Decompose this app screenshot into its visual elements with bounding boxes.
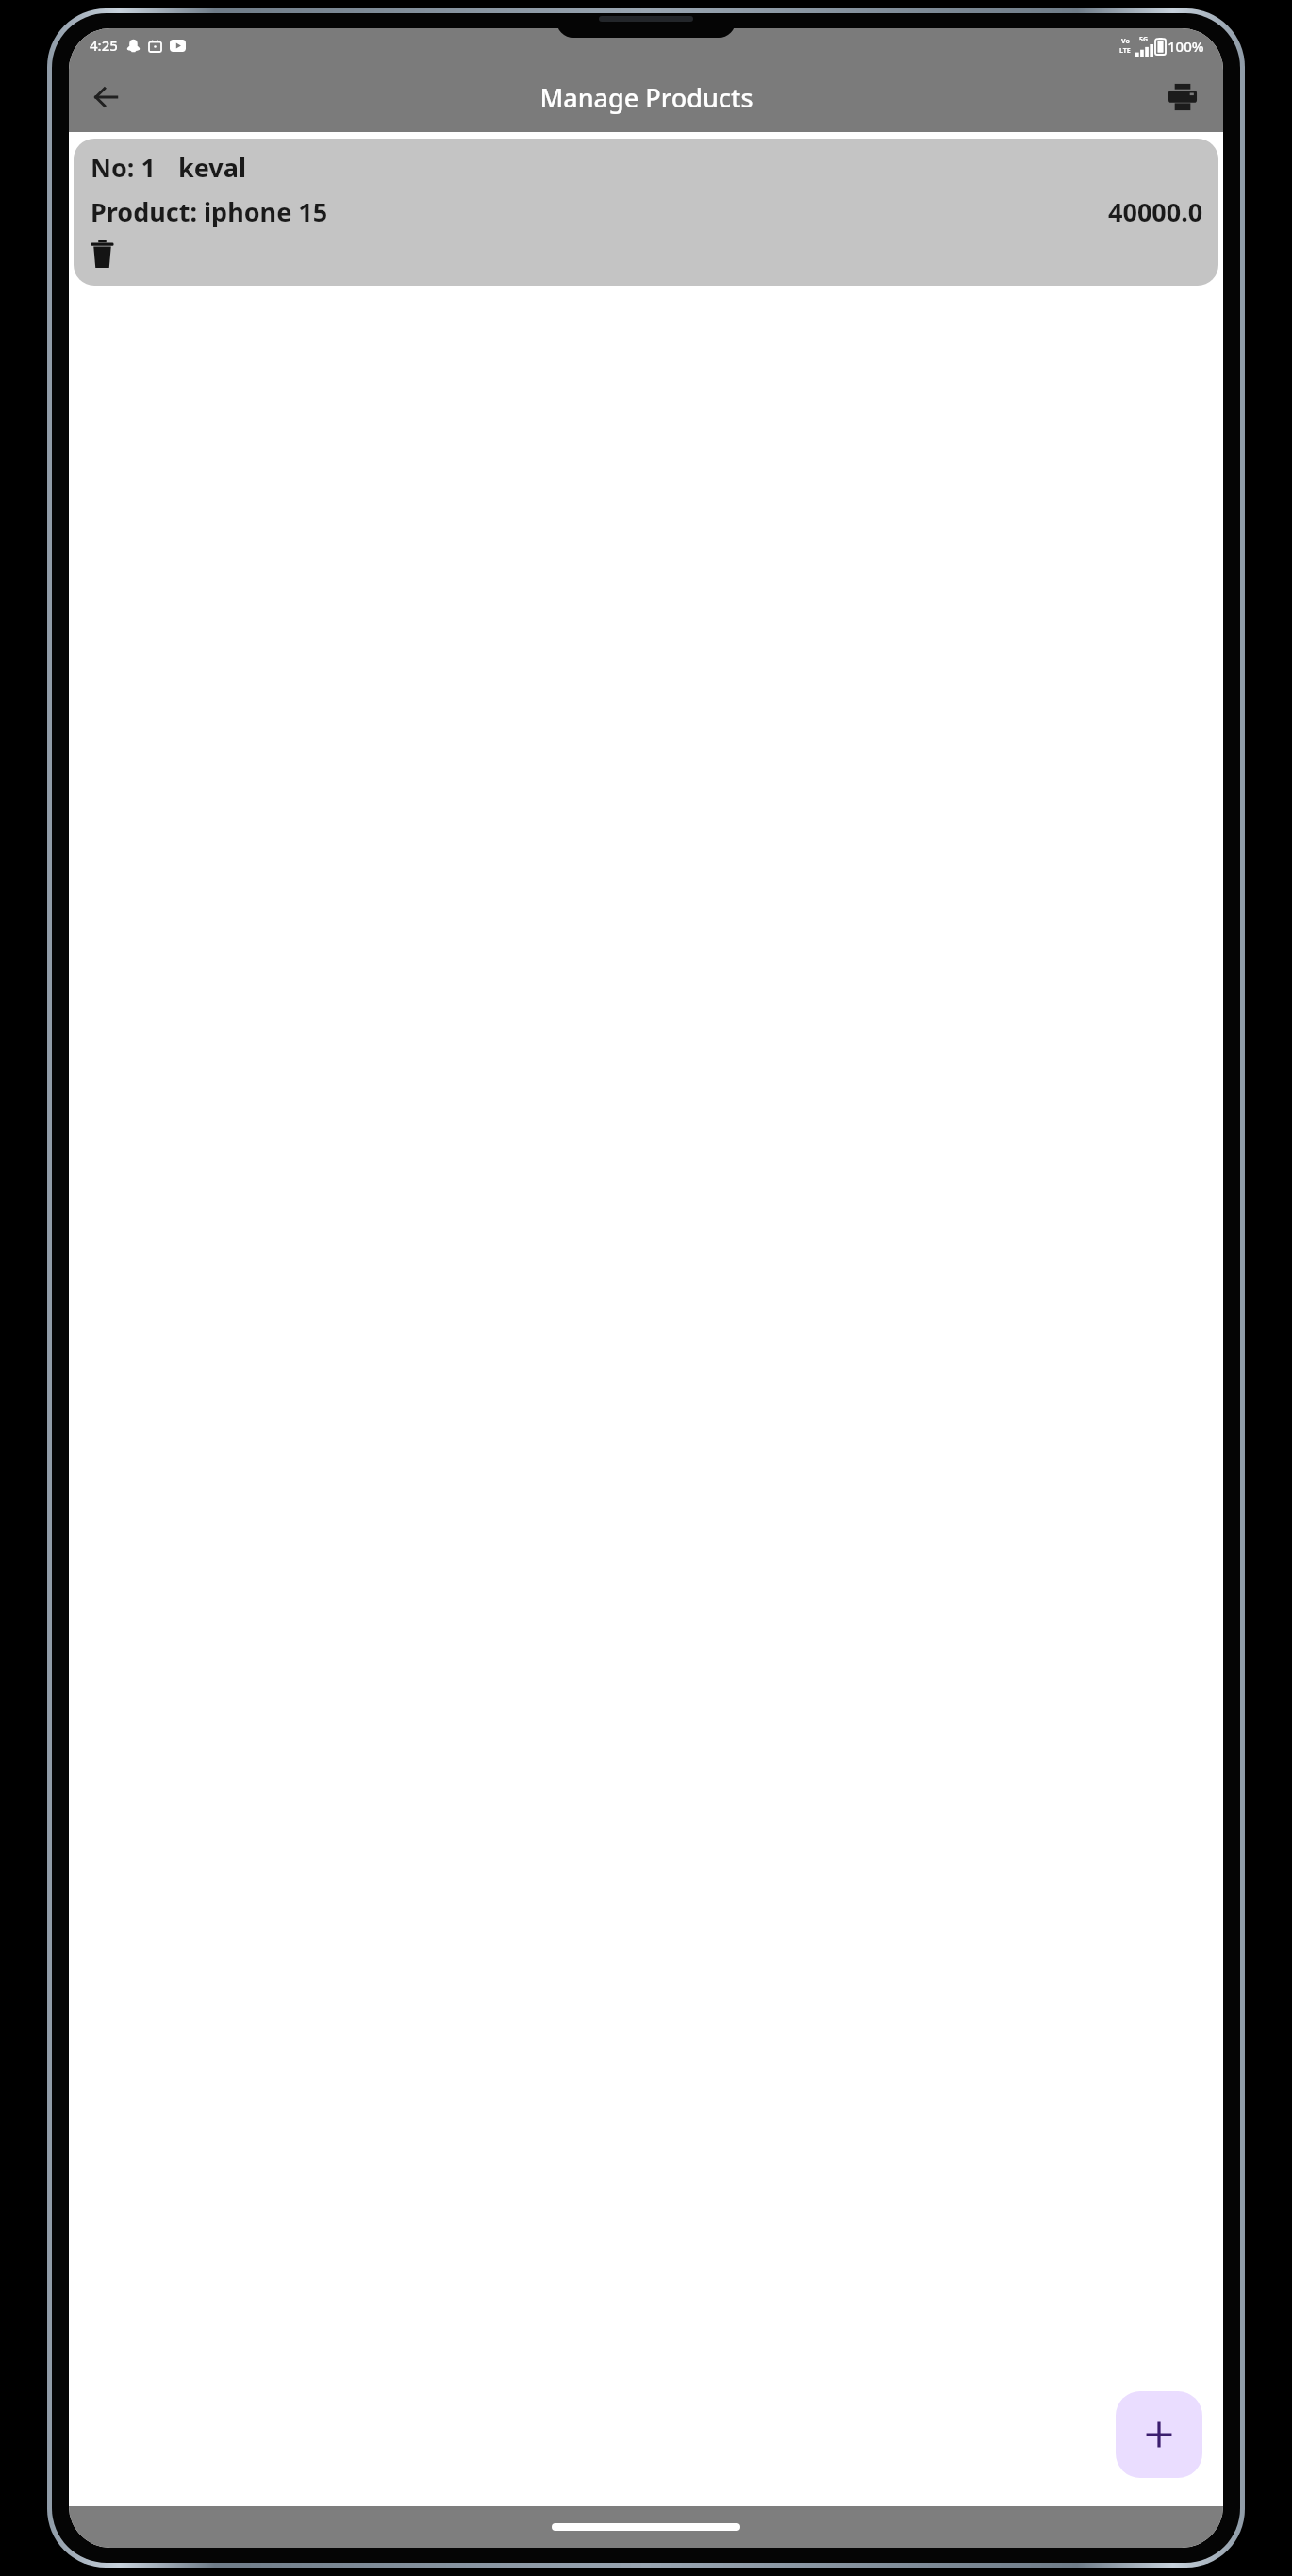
staticText: Manage Products [539,80,754,115]
staticText: 5G [1139,35,1149,44]
staticText: Vo [1121,37,1130,46]
staticText: keval [178,150,246,185]
staticText: 40000.0 [1108,194,1203,229]
button[interactable]: Back [80,72,131,123]
staticText: Product: iphone 15 [91,194,328,229]
staticText: No: 1 [91,150,156,185]
staticText: 100% [1168,37,1204,56]
staticText: LTE [1119,46,1131,56]
button[interactable]: Add product [1116,2391,1202,2478]
button[interactable]: No: 1 [74,139,1218,286]
button[interactable]: Delete product [91,235,130,274]
button[interactable]: Print [1157,72,1208,123]
staticText: 4:25 [90,36,118,55]
